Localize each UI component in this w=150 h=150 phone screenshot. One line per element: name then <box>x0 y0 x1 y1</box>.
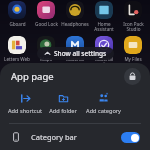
button[interactable]: Add folder <box>44 91 82 117</box>
staticText: Home Assistant <box>94 21 114 33</box>
button[interactable]: Maps <box>32 36 60 62</box>
button[interactable]: Headphones <box>61 1 89 27</box>
button[interactable]: Home Assistant <box>90 1 118 33</box>
button[interactable]: Icon Pack Studio <box>119 1 147 33</box>
staticText: Add category <box>86 107 121 115</box>
button[interactable]: Add shortcut <box>6 91 44 117</box>
staticText: App page <box>11 70 54 83</box>
staticText: Category bar <box>31 132 77 142</box>
staticText: Add folder <box>49 107 77 115</box>
staticText: Show all settings <box>54 49 107 58</box>
staticText: Letters Web <box>4 56 30 62</box>
button[interactable]: Add category <box>82 91 124 117</box>
staticText: Material <box>66 56 84 62</box>
staticText: Maps <box>40 56 52 62</box>
button[interactable]: Material <box>61 36 89 62</box>
staticText: Headphones <box>61 21 89 27</box>
button[interactable]: Good Lock <box>32 1 60 27</box>
button[interactable]: Letters Web <box>3 36 31 62</box>
button[interactable]: Category bar <box>0 124 150 150</box>
button[interactable]: Gboard <box>3 1 31 27</box>
staticText: Good Lock <box>35 21 58 27</box>
staticText: Icon Pack Studio <box>123 21 144 33</box>
staticText: Add shortcut <box>8 107 42 115</box>
button[interactable]: Lock app page <box>124 68 141 85</box>
button[interactable]: My Files <box>119 36 147 62</box>
staticText: Material routines <box>95 56 113 68</box>
button[interactable]: Show all settings <box>37 47 114 60</box>
staticText: Gboard <box>9 21 26 27</box>
staticText: My Files <box>124 56 142 62</box>
button[interactable]: Material routines <box>90 36 118 68</box>
